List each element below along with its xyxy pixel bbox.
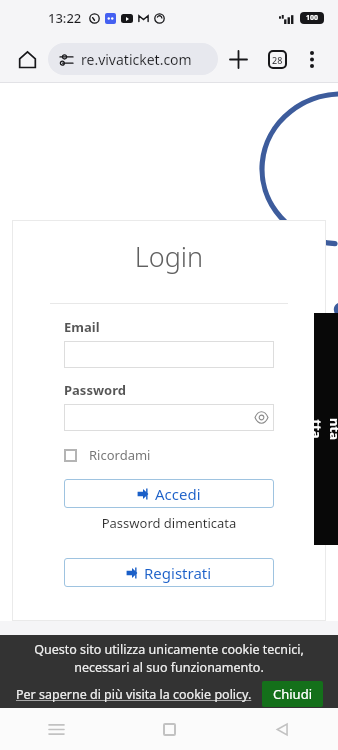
button[interactable]: Back xyxy=(259,708,305,750)
staticText: Ricordami xyxy=(89,446,151,464)
button[interactable]: Contattaci xyxy=(314,313,338,545)
staticText: Contattaci xyxy=(290,417,338,441)
button[interactable]: New tab xyxy=(218,39,258,79)
button[interactable]: Chiudi xyxy=(262,681,323,707)
button[interactable] xyxy=(64,341,274,368)
staticText: Login xyxy=(12,238,326,275)
staticText: 28 xyxy=(272,54,283,66)
staticText: Email xyxy=(64,318,100,336)
staticText: 100 xyxy=(306,13,319,23)
button[interactable]: More options xyxy=(296,43,328,75)
button[interactable]: Per saperne di più visita la cookie poli… xyxy=(16,686,252,703)
staticText: re.vivaticket.com xyxy=(81,50,192,69)
staticText: Password xyxy=(64,381,126,399)
button[interactable]: Password dimenticata xyxy=(64,514,274,532)
staticText: Chiudi xyxy=(273,685,312,703)
staticText: Questo sito utilizza unicamente cookie t… xyxy=(8,641,330,676)
button[interactable]: Home xyxy=(146,708,192,750)
button[interactable]: Tabs xyxy=(258,40,296,78)
staticText: 13:22 xyxy=(48,9,82,27)
button[interactable]: Home xyxy=(10,42,44,76)
button[interactable]: Accedi xyxy=(64,479,274,508)
button[interactable]: Show password xyxy=(64,404,274,431)
button[interactable]: Recent apps xyxy=(33,708,79,750)
button[interactable]: Ricordami xyxy=(64,446,151,464)
other: Show password xyxy=(255,413,268,422)
button[interactable]: re.vivaticket.com xyxy=(48,43,218,75)
staticText: Accedi xyxy=(155,484,201,504)
button[interactable]: Registrati xyxy=(64,558,274,587)
staticText: Registrati xyxy=(144,563,212,583)
